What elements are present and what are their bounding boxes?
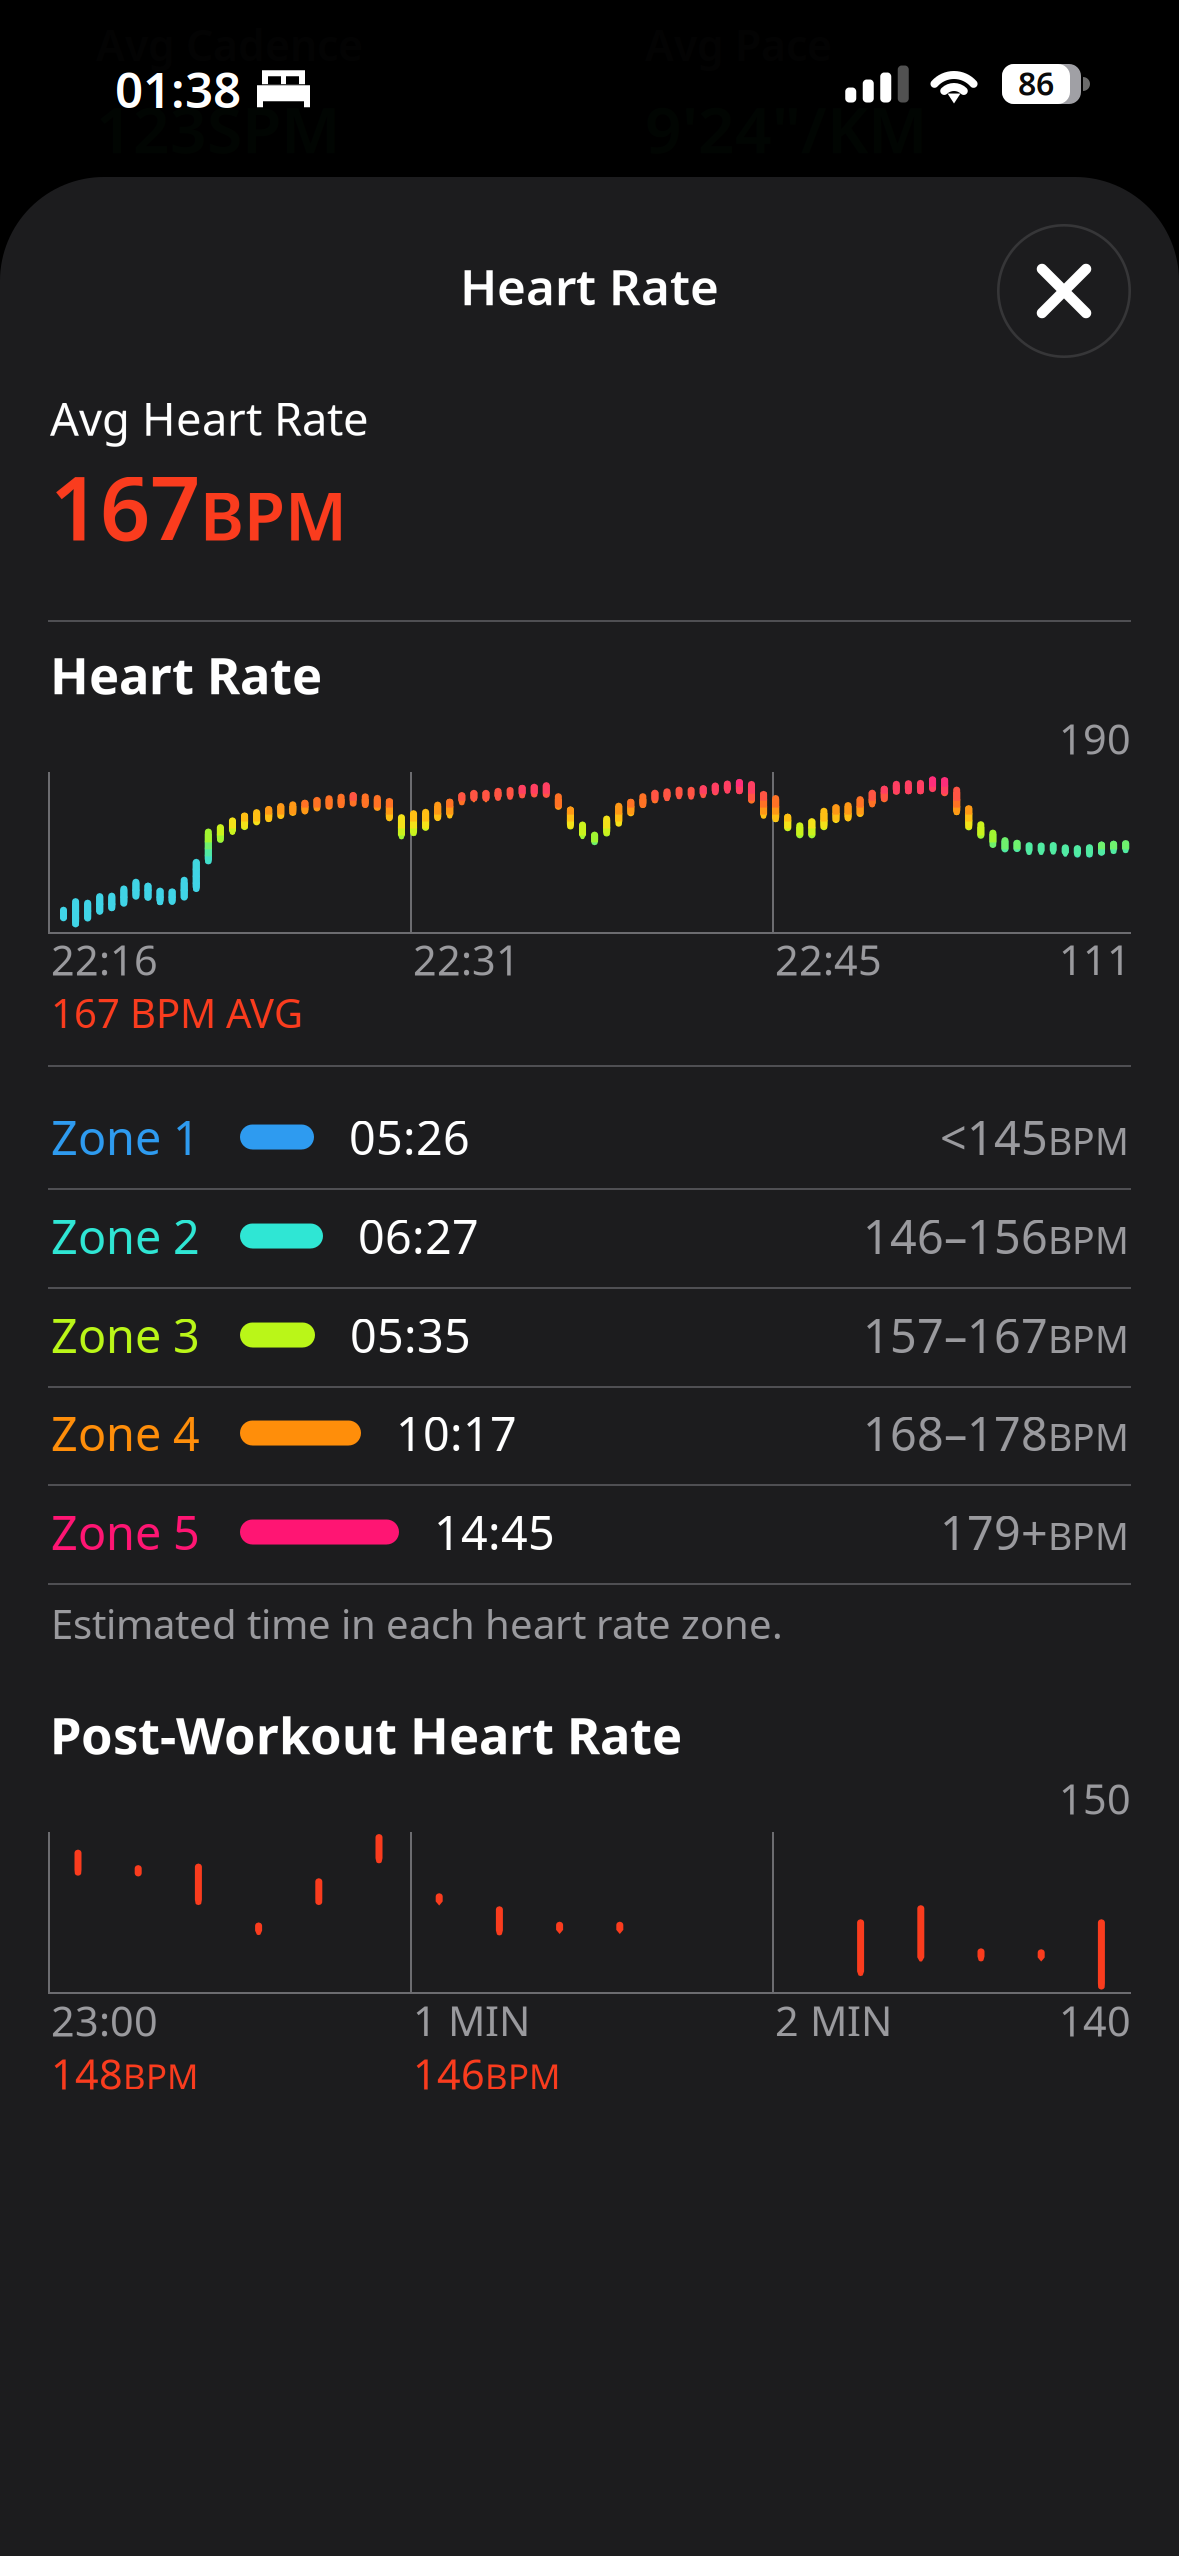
staticText: Zone 1 bbox=[51, 1106, 200, 1168]
button[interactable]: Zone 1 bbox=[48, 1088, 1131, 1186]
staticText: 167 bbox=[50, 448, 200, 565]
staticText: 179+ bbox=[940, 1501, 1048, 1563]
staticText: 2 MIN bbox=[775, 1993, 892, 2048]
button[interactable]: Zone 5 bbox=[48, 1483, 1131, 1581]
button[interactable]: Close bbox=[997, 224, 1131, 358]
staticText: Zone 5 bbox=[51, 1501, 200, 1563]
staticText: BPM bbox=[1048, 1511, 1129, 1560]
staticText: Zone 3 bbox=[51, 1304, 200, 1366]
button[interactable]: Zone 2 bbox=[48, 1187, 1131, 1285]
staticText: 22:16 bbox=[51, 932, 158, 987]
staticText: 22:31 bbox=[413, 932, 520, 987]
staticText: 140 bbox=[1059, 1993, 1131, 2048]
staticText: 14:45 bbox=[434, 1501, 555, 1563]
staticText: Post-Workout Heart Rate bbox=[50, 1701, 682, 1768]
staticText: 146–156 bbox=[863, 1205, 1048, 1267]
staticText: 123SPM bbox=[96, 86, 340, 171]
staticText: 111 bbox=[1059, 932, 1131, 987]
staticText: BPM bbox=[1048, 1215, 1129, 1264]
staticText: <145 bbox=[940, 1106, 1048, 1168]
staticText: BPM bbox=[1048, 1412, 1129, 1461]
staticText: 10:17 bbox=[396, 1402, 517, 1464]
staticText: 146 bbox=[413, 2046, 485, 2101]
button[interactable]: Zone 4 bbox=[48, 1384, 1131, 1482]
staticText: Avg Heart Rate bbox=[50, 388, 369, 448]
staticText: Heart Rate bbox=[460, 253, 719, 319]
button[interactable]: Zone 3 bbox=[48, 1286, 1131, 1384]
staticText: 22:45 bbox=[775, 932, 882, 987]
staticText: 05:35 bbox=[350, 1304, 471, 1366]
staticText: BPM bbox=[200, 470, 347, 559]
staticText: 168–178 bbox=[863, 1402, 1048, 1464]
staticText: 157–167 bbox=[863, 1304, 1048, 1366]
staticText: 86 bbox=[1018, 62, 1054, 104]
staticText: Zone 2 bbox=[51, 1205, 200, 1267]
staticText: 06:27 bbox=[358, 1205, 479, 1267]
staticText: 05:26 bbox=[349, 1106, 470, 1168]
staticText: 148 bbox=[51, 2046, 123, 2101]
staticText: 23:00 bbox=[51, 1993, 158, 2048]
staticText: 167 BPM AVG bbox=[51, 986, 303, 1039]
staticText: BPM bbox=[1048, 1116, 1129, 1165]
staticText: Avg Cadence bbox=[96, 16, 363, 73]
staticText: Heart Rate bbox=[50, 641, 322, 708]
staticText: 1 MIN bbox=[413, 1993, 530, 2048]
staticText: BPM bbox=[123, 2053, 198, 2099]
staticText: BPM bbox=[485, 2053, 560, 2099]
staticText: 150 bbox=[1059, 1771, 1131, 1826]
staticText: Zone 4 bbox=[51, 1402, 200, 1464]
staticText: 01:38 bbox=[115, 56, 241, 121]
staticText: 190 bbox=[1059, 711, 1131, 766]
staticText: Estimated time in each heart rate zone. bbox=[51, 1597, 783, 1650]
staticText: BPM bbox=[1048, 1314, 1129, 1363]
staticText: 9'24"/KM bbox=[645, 86, 927, 171]
